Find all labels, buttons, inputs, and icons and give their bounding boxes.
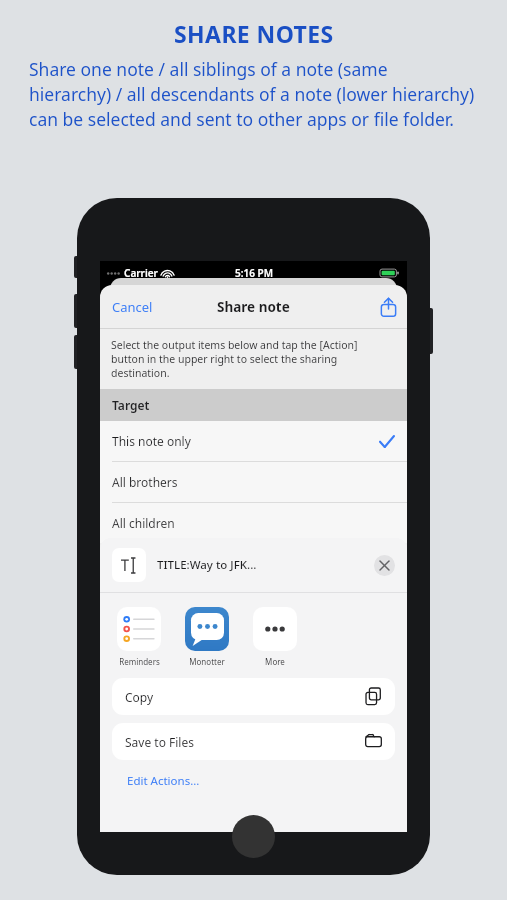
staticText: Edit Actions... xyxy=(127,773,200,789)
button[interactable]: This note only xyxy=(100,421,407,461)
staticText: All children xyxy=(112,515,175,531)
button[interactable]: Save to Files xyxy=(112,723,395,760)
button[interactable]: Copy xyxy=(112,678,395,715)
staticText: Copy xyxy=(125,689,154,705)
staticText: Share one note / all siblings of a note … xyxy=(29,57,483,131)
staticText: Target xyxy=(112,397,150,413)
staticText: More xyxy=(265,656,285,667)
button[interactable]: Share xyxy=(370,292,407,322)
button[interactable]: All brothers xyxy=(100,462,407,502)
staticText: SHARE NOTES xyxy=(174,18,334,49)
button[interactable]: Monotter xyxy=(184,607,230,667)
staticText: Monotter xyxy=(189,656,225,667)
staticText: Reminders xyxy=(119,656,160,667)
staticText: This note only xyxy=(112,433,191,449)
button[interactable]: Reminders xyxy=(116,607,162,667)
staticText: Save to Files xyxy=(125,734,194,750)
button[interactable]: Cancel xyxy=(100,292,165,322)
staticText: Share note xyxy=(217,298,290,316)
button[interactable]: Close xyxy=(374,555,395,576)
staticText: All brothers xyxy=(112,474,178,490)
button[interactable]: All children xyxy=(100,503,407,543)
staticText: Carrier xyxy=(124,266,158,280)
staticText: TITLE:Way to JFK... xyxy=(157,557,257,573)
button[interactable]: Edit Actions... xyxy=(100,760,407,802)
button[interactable]: More xyxy=(252,607,298,667)
staticText: Select the output items below and tap th… xyxy=(111,338,393,380)
staticText: Cancel xyxy=(112,298,153,316)
staticText: 5:16 PM xyxy=(235,266,273,280)
